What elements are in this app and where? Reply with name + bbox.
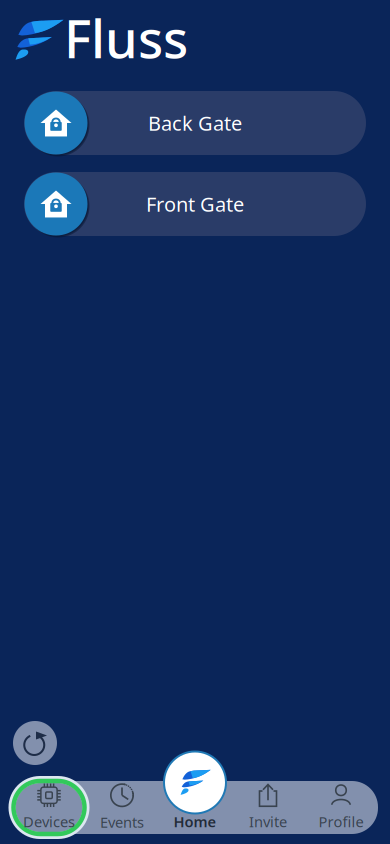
staticText: Home [173,812,216,831]
button[interactable]: Front Gate [24,172,366,236]
button[interactable]: Home [163,750,227,814]
button[interactable]: Invite [231,781,304,834]
staticText: Invite [249,812,287,831]
button[interactable]: Refresh [13,721,57,765]
button[interactable]: Back Gate [24,91,366,155]
button[interactable]: Devices [12,781,85,834]
staticText: Front Gate [146,191,244,217]
staticText: Profile [318,812,363,831]
staticText: Devices [23,812,75,831]
staticText: Fluss [64,3,188,73]
button[interactable]: Events [85,781,158,834]
staticText: Back Gate [148,110,242,136]
staticText: Events [100,812,144,832]
button[interactable]: Home [158,781,231,834]
button[interactable]: Profile [304,781,377,834]
